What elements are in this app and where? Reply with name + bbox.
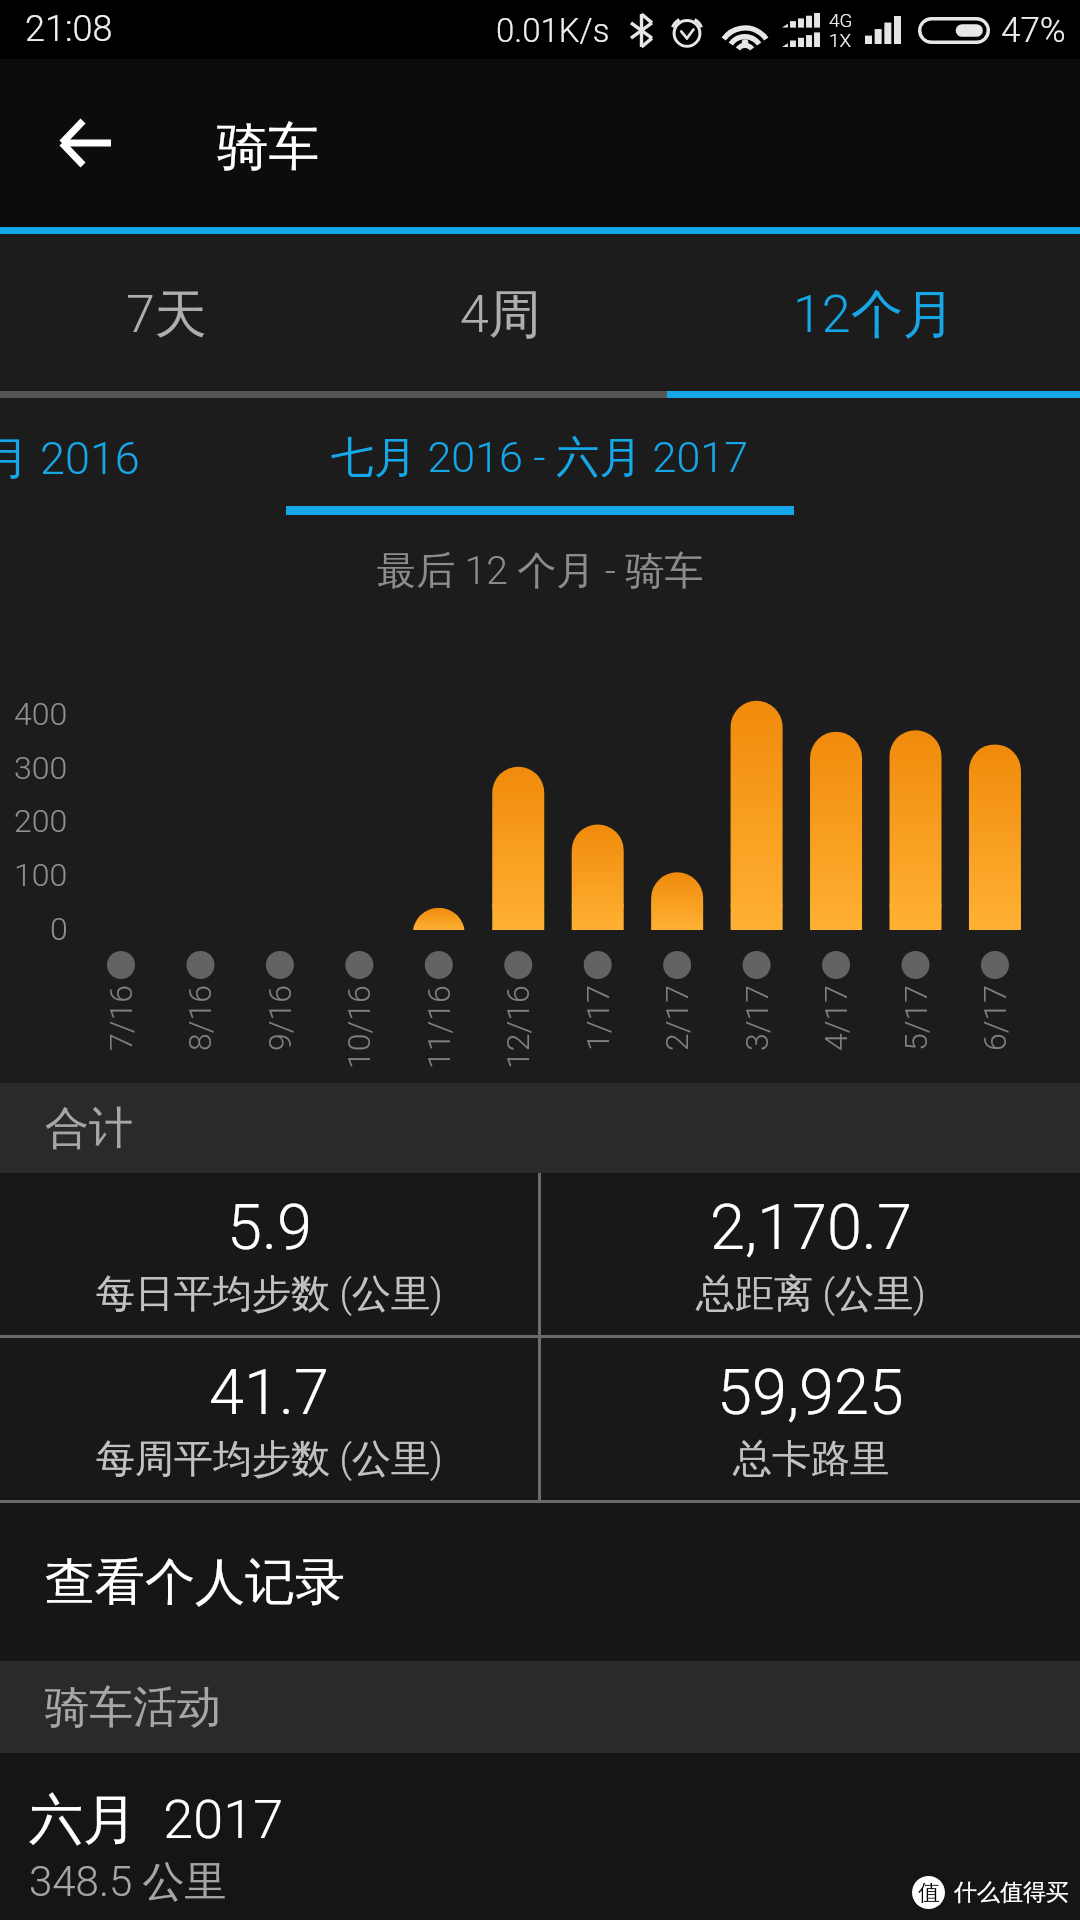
staticText: 合计 xyxy=(45,1101,133,1156)
button[interactable]: Back xyxy=(40,97,132,189)
staticText: 月 2016 xyxy=(0,431,140,488)
staticText: 什么值得买 xyxy=(954,1878,1069,1907)
button[interactable]: 4周 xyxy=(333,234,667,398)
staticText: 7天 xyxy=(126,282,207,348)
staticText: 六月 2017 xyxy=(29,1786,284,1854)
staticText: 348.5 公里 xyxy=(29,1856,227,1909)
staticText: 2,170.7 xyxy=(710,1191,912,1265)
staticText: 总卡路里 xyxy=(733,1434,889,1483)
button[interactable]: 六月 2017 xyxy=(0,1753,1080,1920)
staticText: 0.01K/s xyxy=(496,11,610,50)
staticText: 5.9 xyxy=(227,1191,312,1265)
staticText: 12个月 xyxy=(793,282,955,348)
staticText: 查看个人记录 xyxy=(45,1551,345,1614)
staticText: 47% xyxy=(1001,10,1066,51)
staticText: 每日平均步数 (公里) xyxy=(96,1269,443,1318)
button[interactable]: 2,170.7 xyxy=(541,1173,1080,1335)
staticText: 值 xyxy=(918,1879,940,1907)
button[interactable]: 12个月 xyxy=(667,234,1080,398)
staticText: 总距离 (公里) xyxy=(696,1269,926,1318)
staticText: 59,925 xyxy=(717,1356,904,1430)
staticText: 每周平均步数 (公里) xyxy=(96,1434,443,1483)
button[interactable]: 41.7 xyxy=(0,1338,538,1500)
staticText: 21:08 xyxy=(25,8,113,50)
staticText: 骑车活动 xyxy=(45,1680,221,1735)
staticText: 41.7 xyxy=(209,1356,329,1430)
button[interactable]: 7天 xyxy=(0,234,333,398)
button[interactable]: 5.9 xyxy=(0,1173,538,1335)
button[interactable]: 59,925 xyxy=(541,1338,1080,1500)
staticText: 七月 2016 - 六月 2017 xyxy=(331,431,749,485)
staticText: 骑车 xyxy=(217,115,319,179)
staticText: 4周 xyxy=(460,282,541,348)
staticText: 最后 12 个月 - 骑车 xyxy=(377,546,704,595)
staticText: 4G 1X xyxy=(829,9,853,51)
button[interactable]: 查看个人记录 xyxy=(0,1503,1080,1661)
